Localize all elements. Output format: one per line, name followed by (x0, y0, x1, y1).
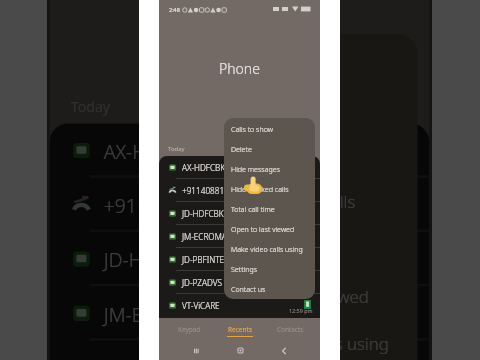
staticText: +911408813 (182, 185, 229, 196)
staticText: Calls to show (219, 48, 318, 71)
staticText: AX-HDFCBK (104, 137, 208, 163)
button[interactable]: Back (262, 341, 306, 360)
staticText: 2:48 (169, 6, 180, 13)
staticText: Total call time (231, 204, 275, 214)
button[interactable]: Hide messages (224, 159, 315, 179)
staticText: JD-PZADVS (182, 277, 222, 288)
staticText: Delete (219, 95, 269, 119)
staticText: Make video calls using (219, 331, 389, 355)
staticText: Recents (228, 325, 253, 334)
staticText: Today (71, 97, 111, 116)
button[interactable]: Calls to show (203, 34, 418, 83)
staticText: 12:59 pm (289, 307, 313, 314)
staticText: Open to last viewed (219, 284, 370, 307)
staticText: Settings (231, 264, 258, 274)
staticText: Today (168, 145, 185, 153)
staticText: Calls to show (231, 124, 273, 134)
staticText: Contact us (231, 284, 266, 294)
staticText: Hide blocked calls (219, 189, 356, 213)
button[interactable]: Total call time (203, 225, 418, 272)
button[interactable]: +911408813 (49, 178, 429, 232)
button[interactable]: Calls to show (224, 118, 315, 139)
button[interactable]: AX-HDFCBK (159, 156, 320, 179)
button[interactable]: Settings (224, 259, 315, 279)
staticText: Hide messages (219, 142, 335, 166)
button[interactable]: +911408813 (159, 179, 320, 202)
button[interactable]: JD-PBFINTE (159, 248, 320, 271)
button[interactable]: VT-ViCARE (159, 294, 320, 317)
staticText: Make video calls using (231, 244, 303, 254)
button[interactable]: Hide blocked calls (203, 178, 418, 225)
button[interactable]: Make video calls using (203, 319, 418, 360)
staticText: JD-PBFINTE (104, 355, 205, 360)
button[interactable]: Hide blocked calls (224, 179, 315, 199)
button[interactable]: Make video calls using (224, 239, 315, 259)
button[interactable]: Total call time (224, 199, 315, 219)
button[interactable]: JD-HDFCBK (49, 232, 429, 286)
button[interactable]: Contacts (265, 319, 315, 339)
staticText: JD-HDFCBK (104, 246, 203, 272)
staticText: Open to last viewed (231, 224, 295, 234)
button[interactable]: AX-HDFCBK (49, 123, 429, 178)
button[interactable]: Hide messages (203, 130, 418, 178)
staticText: Hide messages (231, 164, 280, 174)
staticText: Contacts (277, 325, 304, 334)
button[interactable]: JD-HDFCBK (159, 202, 320, 225)
button[interactable]: Keypad (164, 319, 215, 339)
staticText: Total call time (219, 237, 323, 260)
staticText: Keypad (178, 325, 201, 334)
button[interactable]: JM-ECROMA (49, 286, 429, 340)
button[interactable]: JM-ECROMA (159, 225, 320, 248)
button[interactable]: JD-PBFINTE (49, 340, 429, 360)
staticText: Phone (219, 59, 260, 78)
staticText: Delete (231, 144, 252, 154)
button[interactable]: Delete (224, 139, 315, 159)
button[interactable]: Recents (215, 319, 265, 339)
button[interactable]: JD-PZADVS (159, 271, 320, 294)
staticText: JD-HDFCBK (182, 208, 224, 219)
staticText: +911408813 (104, 192, 215, 218)
button[interactable]: Home (218, 341, 262, 360)
staticText: JD-PBFINTE (182, 254, 225, 265)
staticText: Hide blocked calls (231, 184, 289, 194)
button[interactable]: Delete (203, 83, 418, 130)
button[interactable]: Open to last viewed (224, 219, 315, 239)
staticText: VT-ViCARE (182, 300, 220, 311)
button[interactable]: Open to last viewed (203, 272, 418, 319)
button[interactable]: Contact us (224, 279, 315, 299)
staticText: JM-ECROMA (104, 300, 210, 326)
button[interactable]: Recent apps (173, 341, 218, 360)
staticText: JM-ECROMA (182, 231, 227, 242)
staticText: AX-HDFCBK (182, 162, 226, 173)
